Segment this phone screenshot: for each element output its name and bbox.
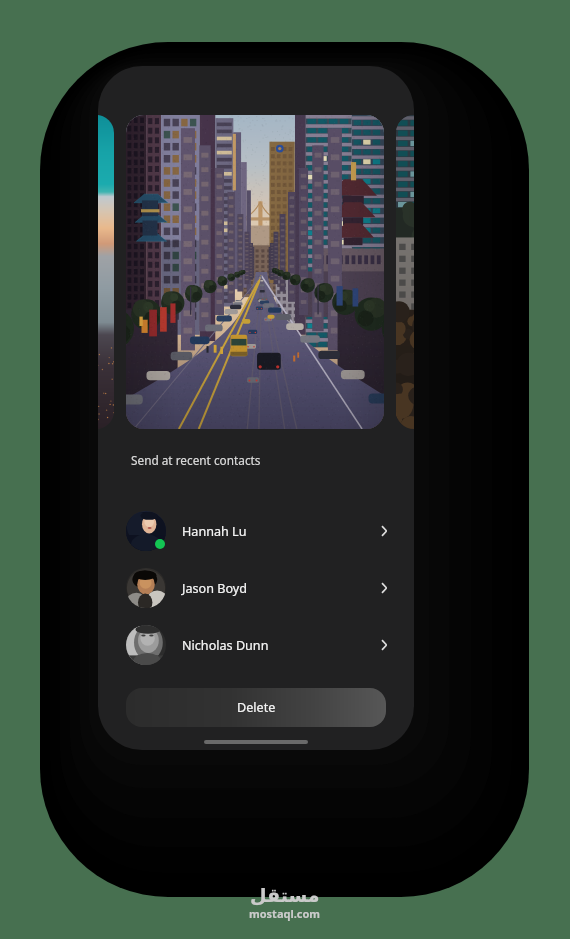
staticText: مستقل	[250, 884, 320, 906]
staticText: Jason Boyd	[182, 580, 247, 597]
button[interactable]: Selected photo of a city street	[126, 115, 384, 429]
other: Open Jason Boyd	[372, 576, 396, 600]
button[interactable]: Jason Boyd	[98, 568, 414, 608]
staticText: Nicholas Dunn	[182, 637, 269, 654]
button[interactable]: Nicholas Dunn	[98, 625, 414, 665]
button[interactable]: Next photo	[396, 115, 414, 429]
staticText: mostaql.com	[249, 906, 321, 921]
staticText: Send at recent contacts	[131, 452, 261, 468]
staticText: Hannah Lu	[182, 523, 247, 540]
staticText: Delete	[237, 699, 276, 716]
other: Open Nicholas Dunn	[372, 633, 396, 657]
button[interactable]: Delete	[126, 688, 386, 727]
other: Open Hannah Lu	[372, 519, 396, 543]
button[interactable]: Hannah Lu	[98, 511, 414, 551]
button[interactable]: Previous photo	[98, 115, 114, 429]
